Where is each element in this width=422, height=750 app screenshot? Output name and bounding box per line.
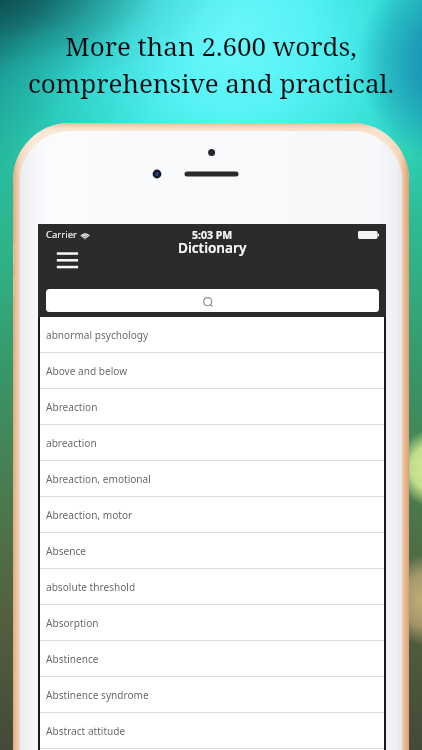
button[interactable]: Abstract attitude [40,713,384,749]
staticText: Abstinence syndrome [46,688,149,702]
button[interactable]: Abreaction, motor [40,497,384,533]
button[interactable]: Absorption [40,605,384,641]
staticText: Dictionary [178,238,247,257]
staticText: Carrier [46,228,77,241]
staticText: 5:03 PM [192,228,233,242]
button[interactable]: Abreaction, emotional [40,461,384,497]
staticText: abreaction [46,436,97,450]
button[interactable]: Abreaction [40,389,384,425]
staticText: More than 2.600 words, comprehensive and… [0,28,422,100]
button[interactable]: abreaction [40,425,384,461]
button[interactable]: Above and below [40,353,384,389]
button[interactable]: Abstinence [40,641,384,677]
button[interactable]: Menu [51,246,80,270]
staticText: abnormal psychology [46,328,149,342]
button[interactable]: Absence [40,533,384,569]
button[interactable]: Search [46,289,379,312]
button[interactable]: absolute threshold [40,569,384,605]
staticText: Abreaction [46,400,98,414]
button[interactable]: abnormal psychology [40,317,384,353]
staticText: Abstract attitude [46,724,126,738]
staticText: absolute threshold [46,580,136,594]
staticText: Abreaction, motor [46,508,133,522]
staticText: Above and below [46,364,128,378]
staticText: Abstinence [46,652,99,666]
button[interactable]: Abstinence syndrome [40,677,384,713]
staticText: Abreaction, emotional [46,472,151,486]
staticText: Absorption [46,616,99,630]
staticText: Absence [46,544,86,558]
